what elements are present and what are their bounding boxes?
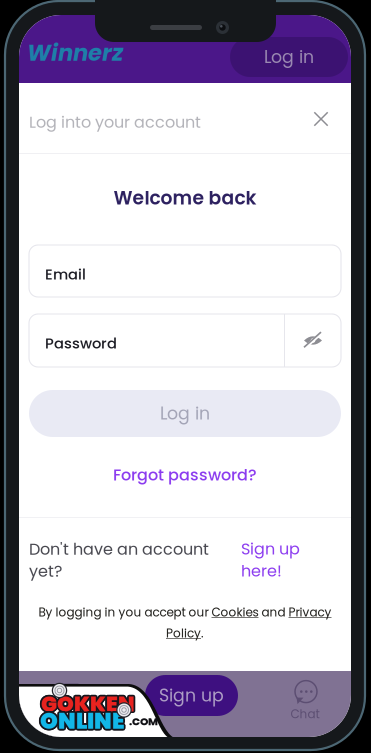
- staticText: GOKKEN: [42, 690, 136, 720]
- staticText: Log into your account: [29, 111, 201, 133]
- button[interactable]: Sign up: [145, 675, 238, 716]
- staticText: ONLINE: [41, 706, 126, 738]
- staticText: GOKKEN: [40, 687, 134, 717]
- staticText: GOKKEN: [39, 689, 133, 719]
- staticText: ONLINE: [38, 706, 123, 737]
- staticText: ONLINE: [39, 706, 124, 738]
- staticText: GOKKEN: [41, 687, 135, 717]
- staticText: ONLINE: [41, 704, 126, 736]
- staticText: ONLINE: [41, 706, 126, 738]
- button[interactable]: Sign up: [241, 538, 307, 582]
- staticText: Log in: [264, 45, 314, 69]
- button[interactable]: Log in: [29, 390, 341, 437]
- staticText: GOKKEN: [39, 688, 133, 718]
- staticText: Policy.: [166, 625, 204, 641]
- staticText: Sign up: [241, 538, 300, 560]
- staticText: Sign up: [159, 683, 224, 708]
- staticText: .COM: [129, 714, 158, 729]
- button[interactable]: Chat: [277, 679, 333, 723]
- button[interactable]: Forgot password?: [19, 462, 351, 488]
- staticText: GOKKEN: [41, 689, 135, 719]
- button[interactable]: Close: [304, 102, 338, 136]
- staticText: ONLINE: [38, 705, 123, 737]
- staticText: Winnerz: [27, 37, 123, 69]
- staticText: GOKKEN: [42, 687, 136, 717]
- staticText: ONLINE: [40, 705, 125, 737]
- staticText: Log in: [160, 401, 210, 426]
- staticText: ONLINE: [42, 705, 127, 737]
- staticText: GOKKEN: [43, 689, 137, 719]
- staticText: Don't have an account: [29, 538, 209, 560]
- button[interactable]: Log in: [230, 37, 348, 77]
- staticText: here!: [241, 560, 282, 582]
- staticText: By logging in you accept our Cookies and…: [38, 604, 331, 620]
- staticText: Password: [45, 333, 117, 353]
- staticText: Welcome back: [113, 185, 256, 211]
- button[interactable]: Show password: [285, 314, 341, 367]
- staticText: GOKKEN: [42, 690, 136, 720]
- staticText: Email: [45, 264, 86, 284]
- staticText: ONLINE: [40, 707, 125, 738]
- staticText: ONLINE: [40, 703, 125, 735]
- staticText: ONLINE: [39, 703, 124, 735]
- staticText: GOKKEN: [40, 690, 134, 720]
- staticText: Chat: [290, 706, 319, 722]
- staticText: GOKKEN: [39, 690, 133, 720]
- staticText: Forgot password?: [113, 464, 257, 486]
- staticText: ONLINE: [41, 703, 126, 735]
- staticText: ONLINE: [38, 704, 123, 736]
- staticText: GOKKEN: [42, 688, 136, 718]
- staticText: GOKKEN: [41, 691, 135, 721]
- staticText: yet?: [29, 560, 62, 582]
